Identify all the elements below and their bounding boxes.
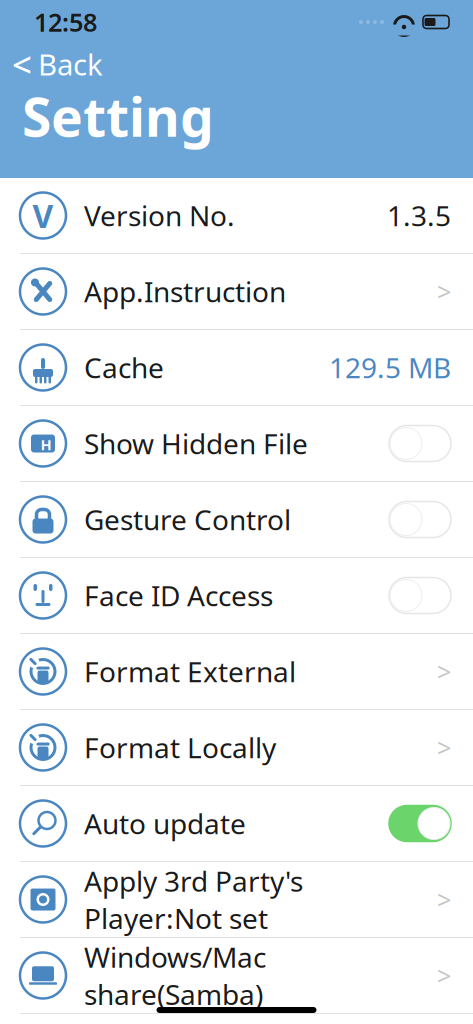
staticText: H <box>40 435 51 454</box>
staticText: > <box>437 731 451 764</box>
staticText: Gesture Control <box>84 501 291 538</box>
staticText: V <box>32 194 53 237</box>
staticText: < <box>12 41 32 87</box>
staticText: Windows/Mac share(Samba) <box>84 938 266 1013</box>
staticText: Format Locally <box>84 729 276 766</box>
button[interactable]: Apply 3rd Party's Player:Not set <box>0 862 473 938</box>
staticText: Back <box>38 44 103 83</box>
staticText: > <box>437 655 451 688</box>
button[interactable]: App.Instruction <box>0 254 473 330</box>
staticText: Show Hidden File <box>84 425 308 462</box>
staticText: 129.5 MB <box>329 349 451 386</box>
staticText: Version No. <box>84 197 235 234</box>
staticText: Cache <box>84 349 164 386</box>
staticText: Apply 3rd Party's Player:Not set <box>84 862 303 937</box>
staticText: 1.3.5 <box>387 197 451 234</box>
button[interactable]: H <box>0 406 473 482</box>
staticText: Setting <box>22 81 214 151</box>
button[interactable]: < <box>0 44 473 84</box>
staticText: App.Instruction <box>84 273 286 310</box>
button[interactable]: Face ID Access <box>0 558 473 634</box>
staticText: Auto update <box>84 805 246 842</box>
button[interactable]: Format External <box>0 634 473 710</box>
staticText: 12:58 <box>34 5 97 39</box>
staticText: > <box>437 959 451 992</box>
staticText: Format External <box>84 653 296 690</box>
staticText: > <box>437 883 451 916</box>
button[interactable]: Auto update <box>0 786 473 862</box>
button[interactable]: Gesture Control <box>0 482 473 558</box>
button[interactable]: V <box>0 178 473 254</box>
staticText: > <box>437 275 451 308</box>
staticText: Face ID Access <box>84 577 273 614</box>
button[interactable]: Format Locally <box>0 710 473 786</box>
button[interactable]: Cache <box>0 330 473 406</box>
button[interactable]: Windows/Mac share(Samba) <box>0 938 473 1014</box>
